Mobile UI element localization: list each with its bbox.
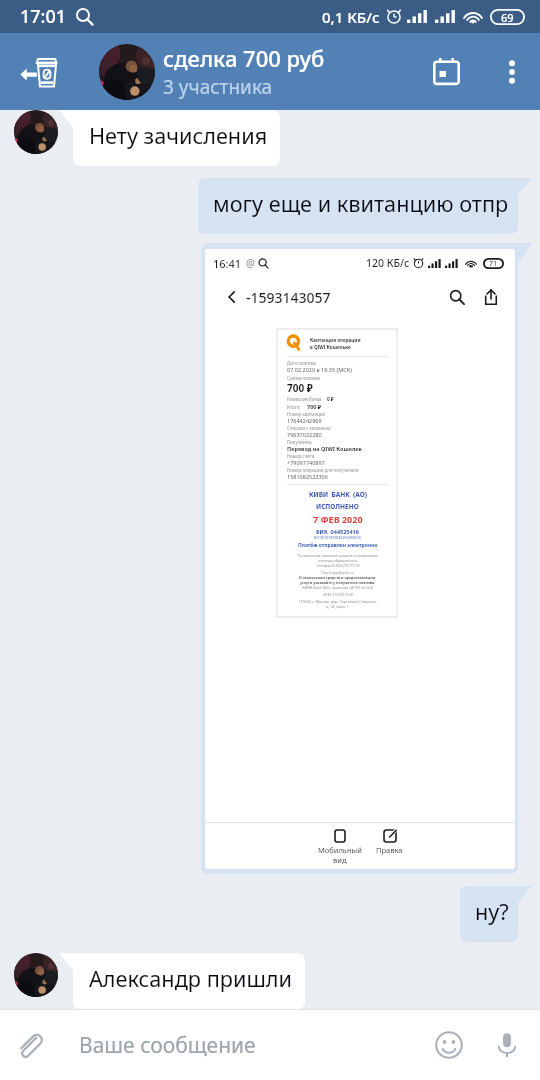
staticText: 3 участника <box>163 74 273 100</box>
staticText: 16:41 <box>213 256 242 271</box>
staticText: ИНН 3123011520 <box>323 592 353 597</box>
staticText: 7 ФЕВ 2020 <box>313 513 363 525</box>
staticText: 120 КБ/с <box>366 256 410 270</box>
staticText: 17:01 <box>20 4 67 29</box>
staticText: -1593143057 <box>246 288 331 307</box>
staticText: Номер счета <box>287 453 315 459</box>
staticText: @ <box>246 256 255 270</box>
staticText: платежа обращайтесь: <box>318 558 358 563</box>
button[interactable]: Attach file <box>0 1010 58 1080</box>
staticText: Мобильный <box>318 845 362 855</box>
staticText: Комиссия банка <box>287 396 322 402</box>
staticText: 17644242969 <box>287 417 322 424</box>
staticText: могу еще и квитанцию отпр <box>213 189 509 219</box>
staticText: К/С30101810845250000416 <box>314 535 361 540</box>
staticText: 700 ₽ <box>287 381 313 395</box>
button[interactable]: 16:41 <box>201 243 532 874</box>
staticText: 700 ₽ <box>307 403 322 410</box>
staticText: Итого: <box>287 404 301 410</box>
button[interactable]: могу еще и квитанцию отпр <box>198 178 532 234</box>
staticText: 0,1 КБ/с <box>322 7 380 27</box>
staticText: Сумма платежа <box>287 375 321 381</box>
staticText: Александр пришли <box>89 964 293 994</box>
staticText: в QIWI Кошельке <box>310 344 351 350</box>
staticText: Квитанция операции <box>310 337 361 343</box>
staticText: КИВИ Банк (АО), лицензия ЦБ РФ № 2241 <box>302 585 374 590</box>
staticText: КИВИ БАНК (АО) <box>309 490 367 499</box>
button[interactable]: More options <box>488 33 536 110</box>
staticText: Ваше сообщение <box>79 1031 256 1060</box>
button[interactable]: Calendar <box>419 33 473 110</box>
staticText: ну? <box>475 897 509 927</box>
staticText: вид <box>333 855 347 865</box>
staticText: Номер квитанции <box>287 411 326 417</box>
staticText: 07.02.2020 в 16:35 (МСК) <box>287 366 352 373</box>
staticText: Телефон 8-800-707-77-59 <box>316 563 360 568</box>
button[interactable]: Нету зачисления <box>59 110 280 166</box>
staticText: 69 <box>501 10 514 25</box>
button[interactable]: Emoji <box>420 1010 478 1080</box>
button[interactable]: Voice message <box>478 1010 536 1080</box>
staticText: Платёж отправлен электронно <box>298 542 378 549</box>
staticText: Почта pay@qiwi.ru <box>321 570 354 575</box>
staticText: Списано с кошелька <box>287 425 331 431</box>
staticText: 79637022280 <box>287 431 322 438</box>
staticText: сделка 700 руб <box>163 43 325 73</box>
staticText: услуги узнавайте у получателя платежа. <box>300 580 376 585</box>
staticText: Нету зачисления <box>89 121 268 151</box>
button[interactable]: Александр пришли <box>59 953 305 1009</box>
staticText: 0 ₽ <box>327 396 334 402</box>
staticText: 71 <box>489 259 498 269</box>
staticText: +79097740897 <box>287 459 325 466</box>
button[interactable]: Back <box>0 33 78 110</box>
staticText: Получатель <box>287 439 313 445</box>
staticText: 117648, г. Москва, мкр. Чертаново Северн… <box>298 599 377 604</box>
staticText: Правка <box>376 845 403 855</box>
staticText: Перевод на QIWI Кошелек <box>287 445 362 452</box>
staticText: д. 1А, корп. 1 <box>326 604 349 609</box>
button[interactable]: ну? <box>460 886 532 942</box>
staticText: БИК 044525416 <box>316 528 359 535</box>
staticText: По вопросам списания средств и проведени… <box>297 553 378 558</box>
staticText: ИСПОЛНЕНО <box>316 502 359 511</box>
staticText: 1581082523306 <box>287 473 328 480</box>
staticText: Дата платежа <box>287 360 316 366</box>
staticText: О зачислении средств и предоставлении <box>299 575 376 580</box>
staticText: Номер операции для получателя <box>287 467 359 473</box>
